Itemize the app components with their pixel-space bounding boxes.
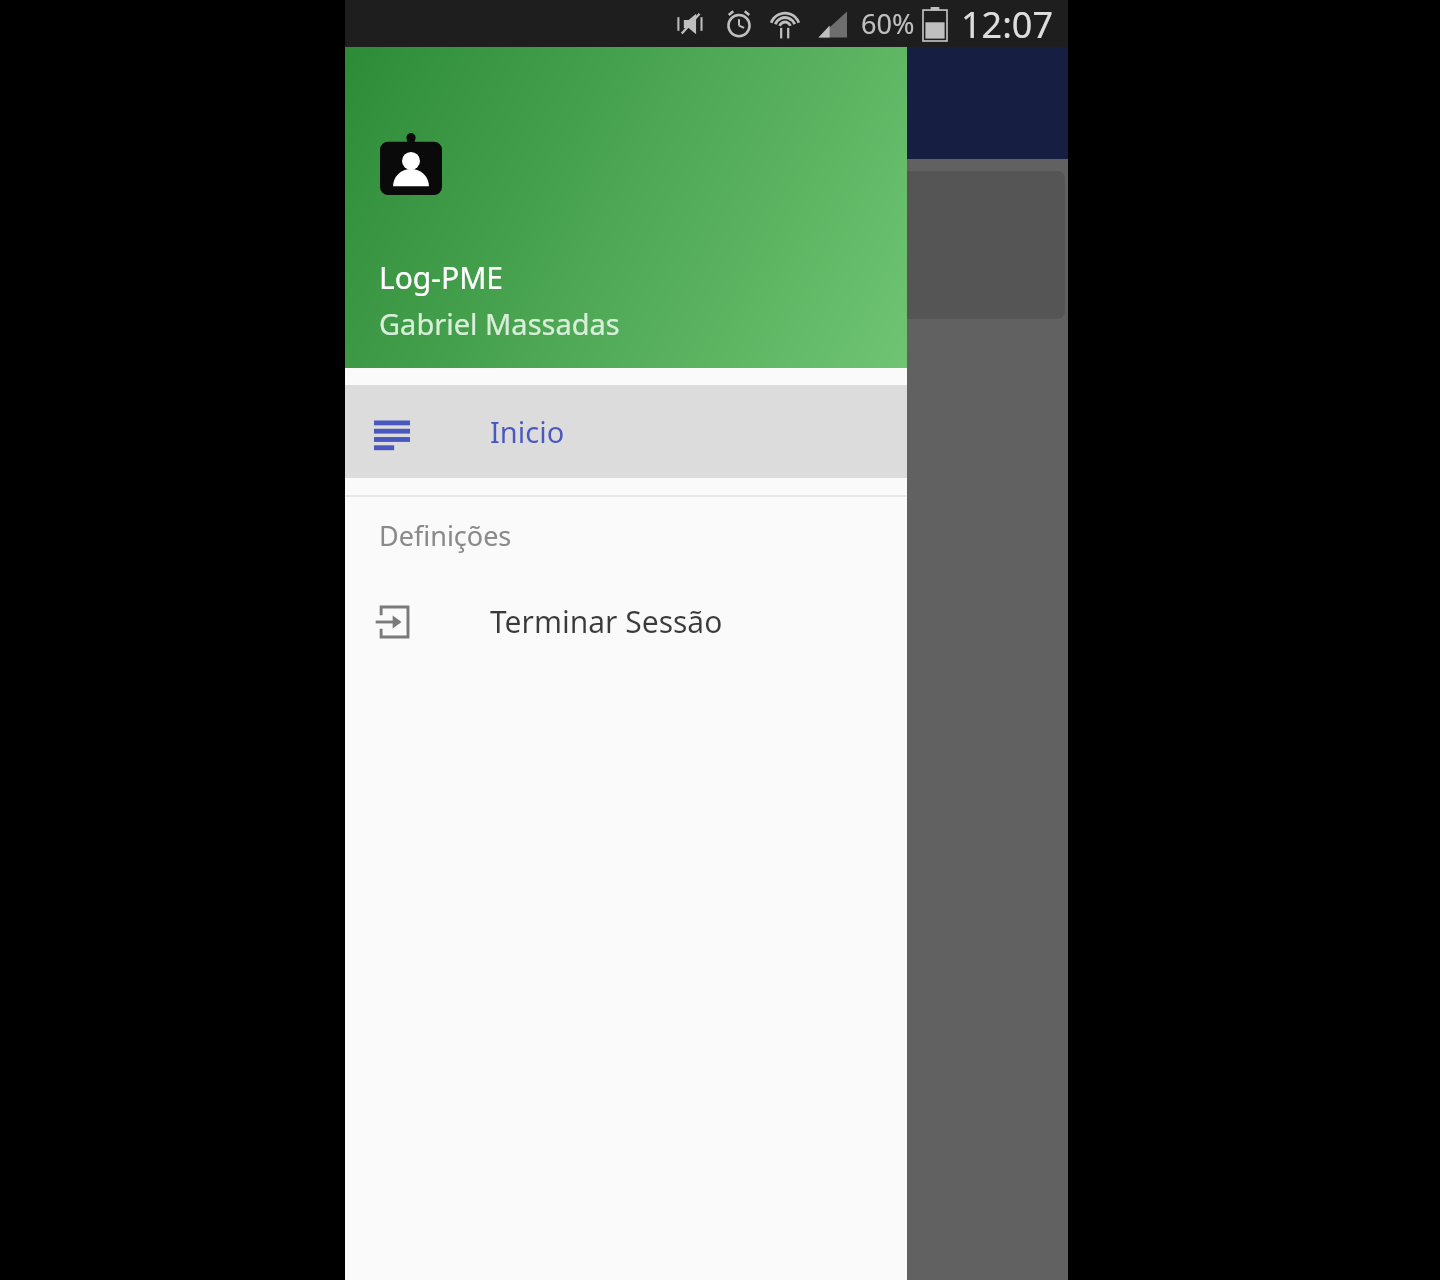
other: Terminar Sessão xyxy=(375,605,409,639)
staticText: Log-PME xyxy=(379,257,504,298)
staticText: Terminar Sessão xyxy=(490,601,723,642)
button[interactable]: Terminar Sessão xyxy=(345,574,907,669)
staticText: 60% xyxy=(861,5,915,42)
other: Profile badge xyxy=(380,133,442,195)
staticText: 12:07 xyxy=(961,0,1054,47)
staticText: Definições xyxy=(379,517,512,554)
staticText: Gabriel Massadas xyxy=(379,304,620,343)
button[interactable]: Inicio xyxy=(345,385,907,478)
other: Inicio xyxy=(374,414,410,450)
staticText: Inicio xyxy=(490,412,565,451)
